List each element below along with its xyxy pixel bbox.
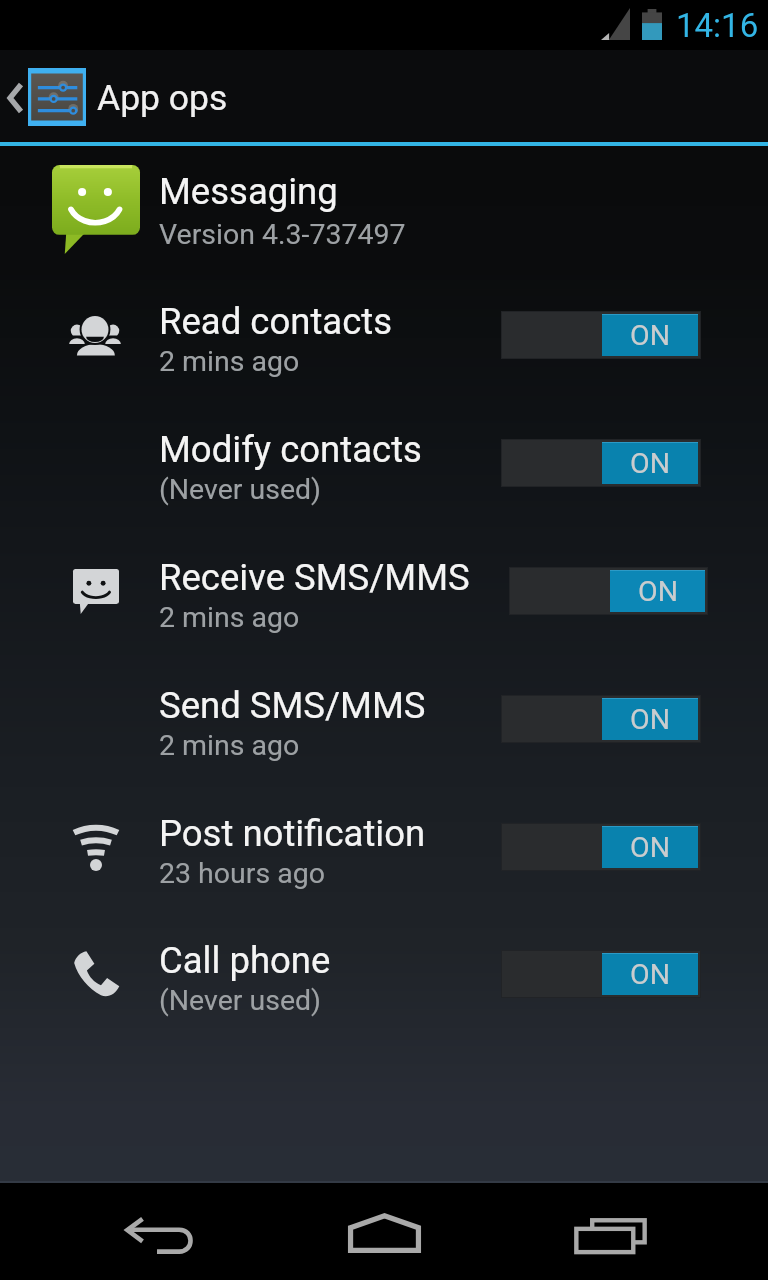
button[interactable]: Recent apps [554, 1198, 666, 1266]
button[interactable]: Toggle permission [501, 950, 701, 998]
button[interactable]: Toggle permission [501, 439, 701, 487]
button[interactable]: Toggle permission [501, 695, 701, 743]
staticText: ON [630, 958, 670, 991]
staticText: ON [630, 703, 670, 736]
button[interactable]: Messaging [0, 148, 768, 274]
button[interactable]: Toggle permission [501, 311, 701, 359]
staticText: ON [630, 319, 670, 352]
staticText: 2 mins ago [159, 729, 300, 762]
button[interactable]: Navigate up: App ops [0, 50, 768, 142]
staticText: Receive SMS/MMS [159, 556, 470, 599]
staticText: (Never used) [159, 984, 322, 1017]
staticText: 14:16 [676, 6, 759, 45]
staticText: Messaging [159, 170, 338, 213]
staticText: Modify contacts [159, 428, 422, 471]
staticText: Send SMS/MMS [159, 684, 426, 727]
staticText: Post notification [159, 812, 426, 855]
staticText: App ops [97, 77, 228, 119]
button[interactable]: Home [328, 1198, 440, 1266]
staticText: 23 hours ago [159, 857, 325, 890]
staticText: Version 4.3-737497 [159, 218, 406, 251]
staticText: ON [630, 831, 670, 864]
staticText: Call phone [159, 939, 331, 982]
button[interactable]: Toggle permission [501, 823, 701, 871]
staticText: ON [638, 575, 678, 608]
staticText: Read contacts [159, 300, 393, 343]
staticText: ON [630, 447, 670, 480]
staticText: (Never used) [159, 473, 322, 506]
staticText: 2 mins ago [159, 345, 300, 378]
button[interactable]: Back [104, 1198, 216, 1266]
button[interactable]: Toggle permission [509, 567, 708, 615]
staticText: 2 mins ago [159, 601, 300, 634]
